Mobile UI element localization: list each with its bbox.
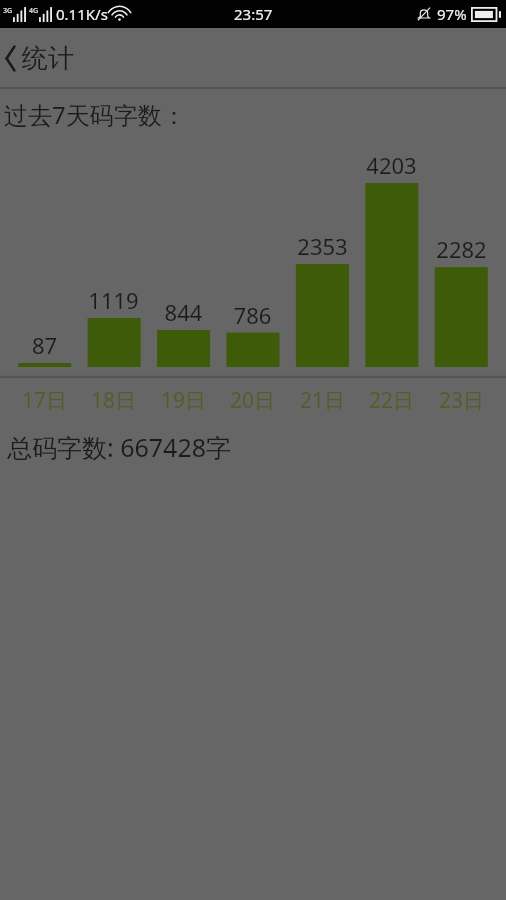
staticText: 786 — [218, 300, 287, 330]
staticText: 2353 — [288, 231, 357, 261]
staticText: 844 — [149, 297, 218, 327]
button[interactable]: Back — [0, 28, 21, 88]
staticText: 21日 — [288, 386, 357, 415]
staticText: 1119 — [79, 285, 148, 315]
staticText: 17日 — [10, 386, 79, 415]
staticText: 0.11K/s — [56, 4, 108, 24]
staticText: 2282 — [427, 234, 496, 264]
staticText: 4203 — [357, 150, 426, 180]
staticText: 22日 — [357, 386, 426, 415]
staticText: 3G — [3, 6, 13, 16]
staticText: 20日 — [218, 386, 287, 415]
staticText: 过去7天码字数： — [4, 98, 186, 131]
staticText: 23:57 — [234, 4, 273, 24]
staticText: 18日 — [79, 386, 148, 415]
staticText: 23日 — [427, 386, 496, 415]
staticText: 87 — [10, 330, 79, 360]
staticText: 统计 — [22, 42, 74, 75]
staticText: 总码字数: 667428字 — [7, 430, 232, 464]
staticText: 19日 — [149, 386, 218, 415]
staticText: 97% — [437, 4, 467, 24]
staticText: 4G — [29, 6, 39, 16]
